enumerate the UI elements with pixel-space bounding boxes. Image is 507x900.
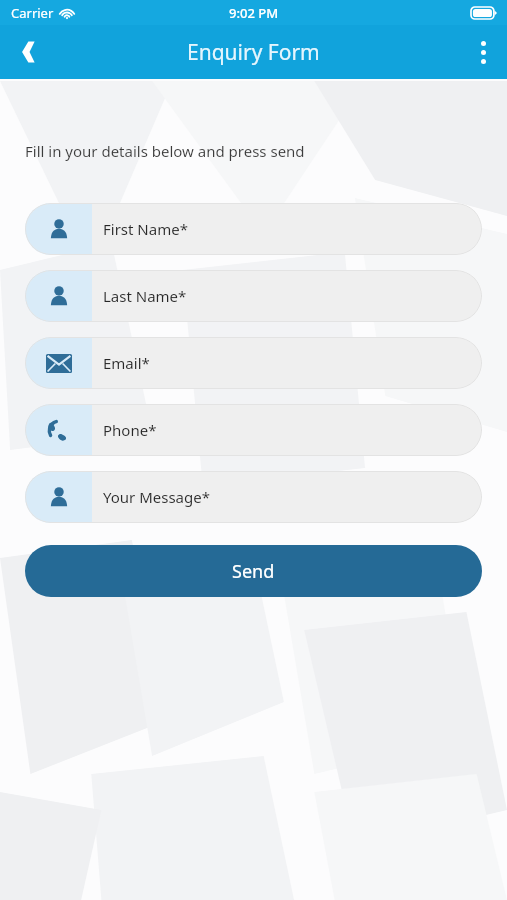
staticText: First Name*	[103, 219, 188, 239]
button[interactable]: Send	[25, 545, 482, 597]
staticText: Enquiry Form	[187, 38, 320, 67]
staticText: Email*	[103, 353, 150, 373]
staticText: Phone*	[103, 420, 157, 440]
button[interactable]: Back	[0, 25, 54, 79]
staticText: Send	[232, 559, 275, 584]
staticText: 9:02 PM	[229, 4, 279, 22]
button[interactable]: First Name*	[25, 203, 482, 255]
button[interactable]: Your Message*	[25, 471, 482, 523]
button[interactable]: Phone*	[25, 404, 482, 456]
button[interactable]: Email*	[25, 337, 482, 389]
button[interactable]: More options	[459, 25, 507, 79]
staticText: Fill in your details below and press sen…	[25, 141, 305, 161]
button[interactable]: Last Name*	[25, 270, 482, 322]
staticText: Your Message*	[103, 487, 210, 507]
staticText: Carrier	[11, 4, 54, 22]
staticText: Last Name*	[103, 286, 187, 306]
